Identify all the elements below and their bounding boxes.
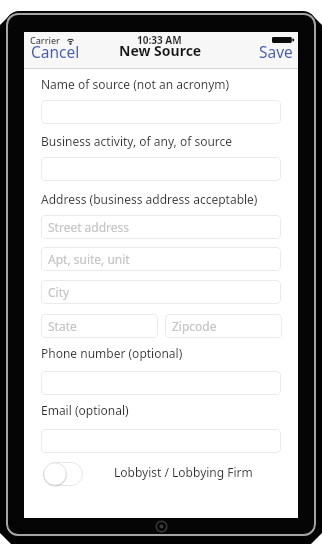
staticText: 10:33 AM [137,33,182,47]
staticText: State [48,318,77,334]
staticText: Lobbyist / Lobbying Firm [114,464,253,480]
staticText: Save [259,41,293,62]
button[interactable]: City [41,280,281,304]
staticText: Address (business address acceptable) [41,191,258,207]
button[interactable]: State [41,314,158,338]
staticText: City [48,284,70,300]
staticText: Cancel [31,41,80,62]
button[interactable]: Zipcode [165,314,282,338]
staticText: Business activity, of any, of source [41,133,233,149]
staticText: Zipcode [172,318,217,334]
button[interactable]: Cancel [26,39,88,65]
button[interactable]: Apt, suite, unit [41,247,281,271]
staticText: Street address [48,219,130,235]
button[interactable]: Lobbyist / Lobbying Firm toggle [43,462,83,486]
button[interactable] [41,157,281,181]
staticText: Carrier [30,34,60,46]
staticText: New Source [119,41,202,60]
staticText: Phone number (optional) [41,345,183,361]
button[interactable]: Save [251,39,298,65]
button[interactable] [41,429,281,453]
staticText: Name of source (not an acronym) [41,76,230,92]
staticText: Email (optional) [41,402,129,418]
button[interactable] [41,100,281,124]
staticText: Apt, suite, unit [48,251,130,267]
button[interactable] [41,371,281,395]
button[interactable]: Street address [41,215,281,239]
